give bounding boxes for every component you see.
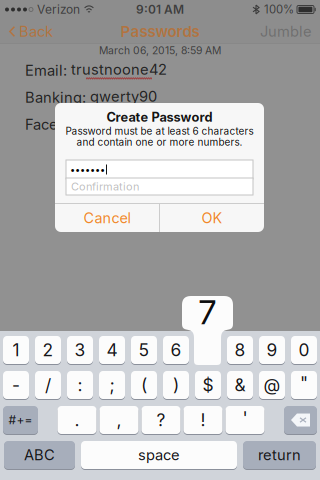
staticText: ": [300, 372, 308, 393]
staticText: 1: [12, 339, 19, 360]
staticText: Cancel: [83, 209, 130, 227]
button[interactable]: 8: [227, 336, 253, 365]
staticText: 0: [298, 339, 309, 360]
button[interactable]: ": [291, 371, 317, 400]
staticText: (: [141, 374, 147, 395]
button[interactable]: .: [57, 406, 96, 435]
staticText: Back: [19, 23, 53, 40]
staticText: qwerty90: [90, 88, 157, 105]
staticText: 5: [138, 339, 149, 360]
staticText: Verizon: [37, 2, 80, 17]
button[interactable]: 1: [3, 336, 29, 365]
button[interactable]: ): [163, 371, 189, 400]
staticText: :: [77, 374, 82, 395]
staticText: !: [200, 409, 205, 430]
staticText: 7: [198, 292, 216, 332]
staticText: 2: [42, 339, 53, 360]
button[interactable]: 6: [163, 336, 189, 365]
staticText: Email:: [25, 62, 71, 79]
staticText: Banking:: [25, 89, 90, 106]
button[interactable]: :: [67, 371, 93, 400]
button[interactable]: 5: [131, 336, 157, 365]
staticText: trustnoone42: [71, 61, 167, 78]
staticText: ?: [156, 409, 165, 430]
staticText: Password must be at least 6 characters: [65, 125, 253, 137]
button[interactable]: OK: [160, 204, 264, 232]
staticText: /: [45, 374, 51, 395]
button[interactable]: Cancel: [55, 204, 159, 232]
staticText: $: [202, 374, 213, 395]
button[interactable]: 3: [67, 336, 93, 365]
button[interactable]: /: [35, 371, 61, 400]
staticText: 1234: [101, 115, 134, 132]
staticText: 8: [234, 339, 245, 360]
staticText: 6: [170, 339, 181, 360]
staticText: 3: [74, 339, 85, 360]
staticText: Confirmation: [71, 180, 139, 193]
button[interactable]: ': [225, 406, 264, 435]
button[interactable]: $: [195, 371, 221, 400]
staticText: 100%: [264, 3, 294, 16]
staticText: -: [12, 374, 20, 395]
staticText: Jumble: [260, 23, 312, 40]
button[interactable]: Delete: [284, 406, 317, 435]
staticText: 9: [266, 339, 277, 360]
staticText: ': [242, 407, 247, 428]
button[interactable]: return: [243, 441, 316, 470]
button[interactable]: !: [183, 406, 222, 435]
staticText: OK: [201, 209, 222, 227]
staticText: •••••••: [70, 164, 105, 175]
staticText: space: [138, 446, 180, 464]
button[interactable]: 0: [291, 336, 317, 365]
staticText: return: [258, 446, 301, 464]
staticText: 4: [106, 339, 117, 360]
button[interactable]: ,: [99, 406, 138, 435]
button[interactable]: ABC: [4, 441, 75, 470]
button[interactable]: -: [3, 371, 29, 400]
staticText: #+=: [8, 413, 32, 427]
button[interactable]: space: [81, 441, 237, 470]
staticText: March 06, 2015, 8:59 AM: [99, 44, 221, 57]
staticText: Facebook:: [25, 116, 101, 133]
staticText: &: [234, 374, 245, 395]
staticText: Passwords: [120, 22, 199, 41]
staticText: ,: [116, 409, 121, 430]
staticText: ABC: [24, 446, 55, 464]
button[interactable]: (: [131, 371, 157, 400]
button[interactable]: 4: [99, 336, 125, 365]
button[interactable]: Jumble: [253, 19, 319, 44]
staticText: and contain one or more numbers.: [76, 136, 242, 148]
staticText: Create Password: [106, 109, 212, 125]
button[interactable]: 9: [259, 336, 285, 365]
button[interactable]: Back: [1, 19, 61, 44]
button[interactable]: #+=: [3, 406, 38, 435]
button[interactable]: &: [227, 371, 253, 400]
button[interactable]: ;: [99, 371, 125, 400]
button[interactable]: ?: [141, 406, 180, 435]
staticText: @: [263, 374, 280, 395]
staticText: .: [74, 409, 79, 430]
staticText: ): [173, 374, 179, 395]
staticText: ;: [109, 374, 114, 395]
button[interactable]: 2: [35, 336, 61, 365]
staticText: 9:01 AM: [136, 2, 184, 17]
button[interactable]: @: [259, 371, 285, 400]
